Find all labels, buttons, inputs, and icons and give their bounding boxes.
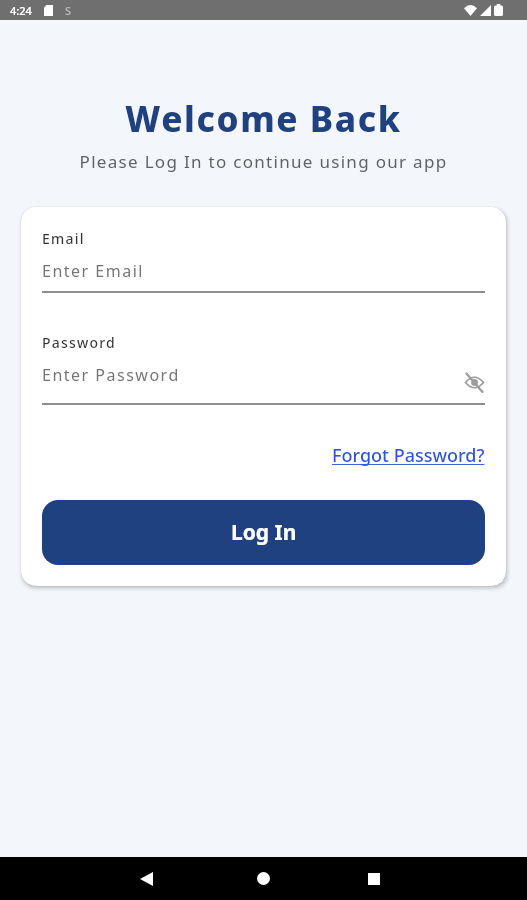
button[interactable] [140,872,153,886]
staticText: S [65,3,72,18]
staticText: Please Log In to continue using our app [0,150,527,173]
staticText: Forgot Password? [332,443,485,468]
staticText: Welcome Back [0,95,527,143]
staticText: Enter Password [42,364,180,386]
staticText: Email [42,229,85,248]
staticText: Password [42,333,116,352]
button[interactable]: Forgot Password? [332,443,485,468]
button[interactable] [257,872,270,885]
staticText: Enter Email [42,260,144,282]
staticText: Log In [231,518,297,547]
button[interactable]: Log In [42,500,485,565]
staticText: 4:24 [10,3,32,18]
